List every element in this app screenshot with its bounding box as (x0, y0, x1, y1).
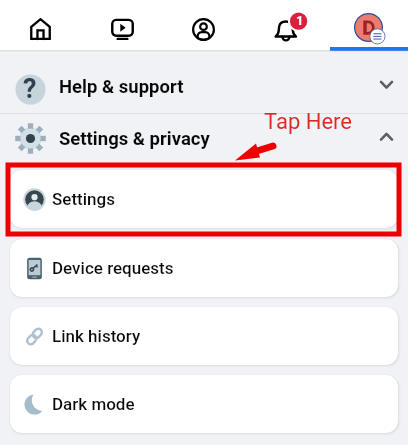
staticText: Tap Here (264, 109, 352, 135)
button[interactable]: Profile (177, 0, 229, 51)
staticText: Link history (52, 326, 141, 346)
staticText: Dark mode (52, 394, 135, 414)
button[interactable]: ? (0, 59, 408, 114)
button[interactable]: Dark mode (10, 375, 398, 433)
staticText: Settings (52, 189, 115, 209)
button[interactable]: Menu (343, 0, 395, 51)
staticText: Device requests (52, 258, 174, 278)
staticText: 1 (296, 13, 304, 28)
staticText: Help & support (59, 76, 184, 98)
staticText: ? (23, 73, 37, 105)
button[interactable]: Notifications (262, 0, 314, 51)
button[interactable]: Video (96, 0, 148, 51)
button[interactable]: Settings (10, 170, 398, 228)
button[interactable]: Link history (10, 307, 398, 365)
staticText: Settings & privacy (59, 128, 210, 150)
button[interactable]: Device requests (10, 239, 398, 297)
button[interactable]: Home (14, 0, 66, 51)
button[interactable]: Settings & privacy (0, 114, 408, 163)
